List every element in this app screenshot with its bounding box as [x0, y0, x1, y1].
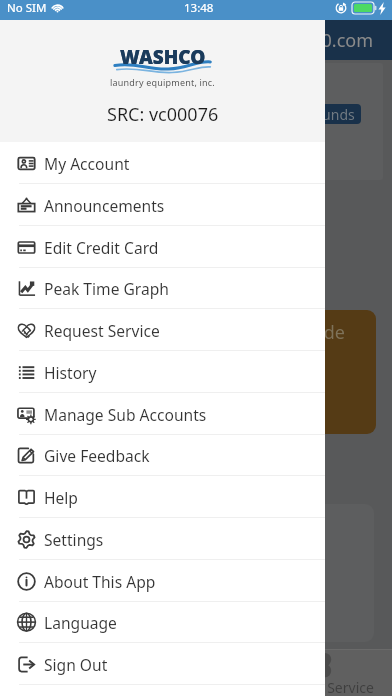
button[interactable]: Sign Out — [0, 643, 325, 685]
button[interactable]: Settings — [0, 518, 325, 560]
staticText: No SIM — [7, 0, 47, 16]
staticText: Edit Credit Card — [44, 237, 159, 258]
staticText: SRC: vc00076 — [107, 102, 219, 127]
button[interactable]: History — [0, 351, 325, 393]
button[interactable]: Language — [0, 601, 325, 643]
staticText: Vend Mode — [249, 320, 345, 345]
button[interactable]: Edit Credit Card — [0, 226, 325, 268]
staticText: Manage Sub Accounts — [44, 404, 207, 425]
staticText: 13:48 — [184, 0, 214, 16]
staticText: Request Service — [270, 678, 374, 696]
button[interactable]: Announcements — [0, 184, 325, 226]
button[interactable]: My Account — [0, 142, 325, 184]
staticText: Announcements — [44, 195, 165, 216]
staticText: Add Funds — [285, 105, 355, 124]
button[interactable]: Peak Time Graph — [0, 267, 325, 309]
button[interactable]: Help — [0, 476, 325, 518]
staticText: My Account — [44, 153, 130, 174]
staticText: Language — [44, 612, 117, 633]
staticText: Settings — [44, 529, 104, 550]
staticText: History — [44, 362, 97, 383]
staticText: Sign Out — [44, 654, 108, 675]
staticText: Request Service — [44, 320, 160, 341]
staticText: About This App — [44, 571, 156, 592]
staticText: washco0.com — [258, 28, 374, 53]
staticText: Give Feedback — [44, 445, 150, 466]
button[interactable]: Request Service — [0, 309, 325, 351]
button[interactable]: Manage Sub Accounts — [0, 393, 325, 435]
button[interactable]: Add Funds — [279, 104, 361, 124]
button[interactable]: Give Feedback — [0, 434, 325, 476]
staticText: Peak Time Graph — [44, 278, 169, 299]
button[interactable]: About This App — [0, 560, 325, 602]
staticText: Help — [44, 487, 78, 508]
button[interactable]: Request Service — [270, 650, 374, 696]
staticText: laundry equipment, inc. — [110, 76, 215, 88]
